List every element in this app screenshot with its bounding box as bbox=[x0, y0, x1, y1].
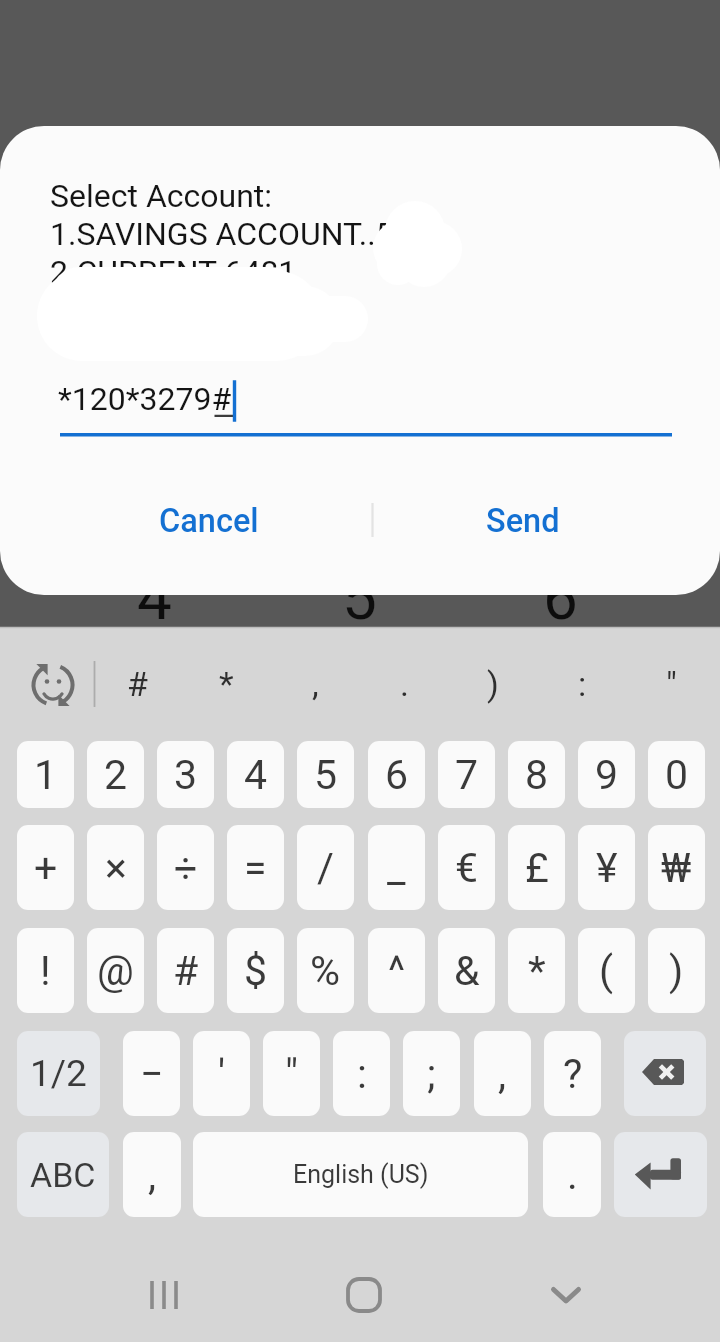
staticText: : bbox=[357, 1050, 367, 1098]
button[interactable]: _ bbox=[368, 825, 425, 910]
button[interactable]: $ bbox=[227, 928, 284, 1013]
button[interactable]: . bbox=[372, 653, 436, 715]
button[interactable]: ; bbox=[403, 1031, 460, 1116]
staticText: ^ bbox=[388, 947, 406, 995]
staticText: $ bbox=[244, 947, 268, 995]
staticText: ) bbox=[669, 947, 684, 995]
button[interactable]: Send bbox=[420, 488, 625, 554]
button[interactable]: £ bbox=[508, 825, 565, 910]
staticText: Send bbox=[486, 502, 560, 540]
button[interactable]: ' bbox=[193, 1031, 250, 1116]
button[interactable]: − bbox=[123, 1031, 180, 1116]
button[interactable]: 8 bbox=[508, 741, 565, 808]
button[interactable]: ¥ bbox=[578, 825, 635, 910]
button[interactable]: ABC bbox=[17, 1132, 109, 1217]
button[interactable]: 1 bbox=[17, 741, 74, 808]
button[interactable]: : bbox=[333, 1031, 390, 1116]
button[interactable]: 7 bbox=[438, 741, 495, 808]
staticText: 3 bbox=[174, 751, 198, 799]
staticText: 6 bbox=[543, 561, 578, 634]
button[interactable]: 1/2 bbox=[17, 1031, 100, 1116]
button[interactable]: Home bbox=[324, 1260, 404, 1330]
button[interactable]: 5 bbox=[297, 741, 354, 808]
button[interactable]: 9 bbox=[578, 741, 635, 808]
button[interactable]: = bbox=[227, 825, 284, 910]
staticText: English (US) bbox=[293, 1160, 429, 1189]
button[interactable]: , bbox=[474, 1031, 531, 1116]
button[interactable]: 2 bbox=[87, 741, 144, 808]
staticText: Select Account: bbox=[50, 177, 273, 215]
staticText: ' bbox=[218, 1050, 226, 1098]
button[interactable]: € bbox=[438, 825, 495, 910]
staticText: ₩ bbox=[661, 844, 692, 892]
staticText: × bbox=[105, 844, 127, 892]
staticText: 2 bbox=[104, 751, 128, 799]
button[interactable]: " bbox=[639, 653, 703, 715]
staticText: . bbox=[567, 1151, 578, 1199]
staticText: " bbox=[666, 664, 677, 704]
button[interactable]: , bbox=[283, 653, 347, 715]
staticText: ? bbox=[563, 1050, 583, 1098]
staticText: = bbox=[244, 844, 267, 892]
staticText: 1.SAVINGS ACCOUNT..5 bbox=[50, 215, 394, 253]
button[interactable]: 6 bbox=[368, 741, 425, 808]
button[interactable]: / bbox=[297, 825, 354, 910]
staticText: . bbox=[400, 664, 409, 704]
staticText: 4 bbox=[244, 751, 268, 799]
staticText: £ bbox=[525, 844, 549, 892]
staticText: *120*3279# bbox=[58, 380, 232, 418]
button[interactable]: Backspace bbox=[624, 1031, 706, 1116]
button[interactable]: 0 bbox=[648, 741, 705, 808]
button[interactable]: ÷ bbox=[157, 825, 214, 910]
staticText: @ bbox=[97, 947, 134, 995]
button[interactable]: % bbox=[297, 928, 354, 1013]
button[interactable]: Hide keyboard bbox=[526, 1260, 606, 1330]
button[interactable]: ( bbox=[578, 928, 635, 1013]
button[interactable]: Recents bbox=[124, 1260, 204, 1330]
button[interactable]: ) bbox=[648, 928, 705, 1013]
staticText: ÷ bbox=[174, 844, 198, 892]
button[interactable]: & bbox=[438, 928, 495, 1013]
button[interactable]: # bbox=[105, 653, 169, 715]
staticText: * bbox=[219, 664, 234, 704]
button[interactable]: : bbox=[550, 653, 614, 715]
staticText: 4 bbox=[137, 561, 172, 634]
staticText: % bbox=[310, 947, 341, 995]
button[interactable]: 3 bbox=[157, 741, 214, 808]
button[interactable]: Enter bbox=[614, 1132, 707, 1217]
staticText: 6 bbox=[385, 751, 409, 799]
staticText: , bbox=[498, 1050, 507, 1098]
staticText: * bbox=[528, 947, 546, 995]
button[interactable]: × bbox=[87, 825, 144, 910]
staticText: # bbox=[173, 947, 199, 995]
button[interactable]: @ bbox=[87, 928, 144, 1013]
button[interactable]: ^ bbox=[368, 928, 425, 1013]
button[interactable]: * bbox=[508, 928, 565, 1013]
staticText: ( bbox=[599, 947, 614, 995]
button[interactable]: Emoji bbox=[22, 653, 84, 715]
button[interactable]: Cancel bbox=[94, 488, 324, 554]
button[interactable]: + bbox=[17, 825, 74, 910]
staticText: : bbox=[578, 664, 587, 704]
staticText: + bbox=[34, 844, 58, 892]
staticText: 1/2 bbox=[30, 1052, 87, 1095]
staticText: ¥ bbox=[596, 844, 618, 892]
button[interactable]: ) bbox=[461, 653, 525, 715]
staticText: , bbox=[148, 1151, 157, 1199]
staticText: 5 bbox=[342, 561, 377, 634]
button[interactable]: English (US) bbox=[193, 1132, 528, 1217]
staticText: 5 bbox=[314, 751, 338, 799]
staticText: # bbox=[127, 664, 148, 704]
button[interactable]: " bbox=[263, 1031, 320, 1116]
staticText: 2.CURRENT 6481 bbox=[50, 253, 297, 291]
button[interactable]: ? bbox=[544, 1031, 601, 1116]
staticText: € bbox=[455, 844, 479, 892]
button[interactable]: * bbox=[194, 653, 258, 715]
button[interactable]: ! bbox=[17, 928, 74, 1013]
staticText: " bbox=[285, 1050, 299, 1098]
button[interactable]: ₩ bbox=[648, 825, 705, 910]
button[interactable]: . bbox=[543, 1132, 601, 1217]
button[interactable]: , bbox=[123, 1132, 181, 1217]
button[interactable]: # bbox=[157, 928, 214, 1013]
button[interactable]: 4 bbox=[227, 741, 284, 808]
